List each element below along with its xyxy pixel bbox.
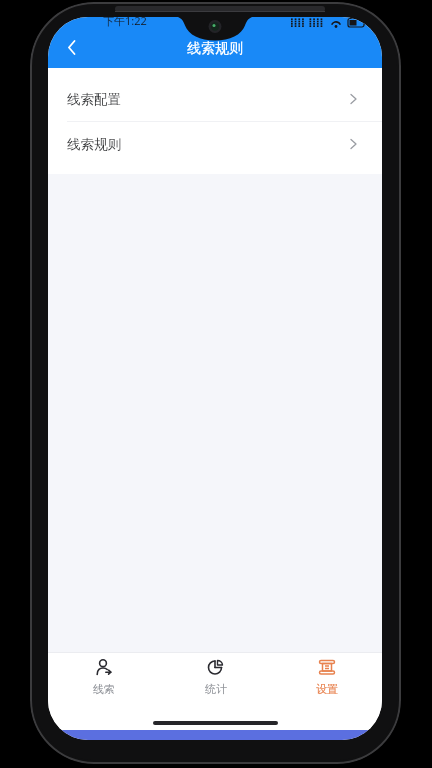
- staticText: 线索: [93, 682, 115, 696]
- button[interactable]: [65, 40, 79, 55]
- staticText: 线索配置: [67, 91, 121, 108]
- button[interactable]: 线索配置: [48, 77, 382, 121]
- button[interactable]: 线索规则: [48, 122, 382, 166]
- button[interactable]: 统计: [160, 652, 271, 714]
- staticText: 下午1:22: [103, 17, 147, 28]
- staticText: 线索规则: [187, 40, 243, 58]
- staticText: 线索规则: [67, 136, 121, 153]
- button[interactable]: 线索: [48, 652, 160, 714]
- staticText: 统计: [205, 682, 227, 696]
- button[interactable]: 设置: [271, 652, 382, 714]
- staticText: 设置: [316, 682, 338, 696]
